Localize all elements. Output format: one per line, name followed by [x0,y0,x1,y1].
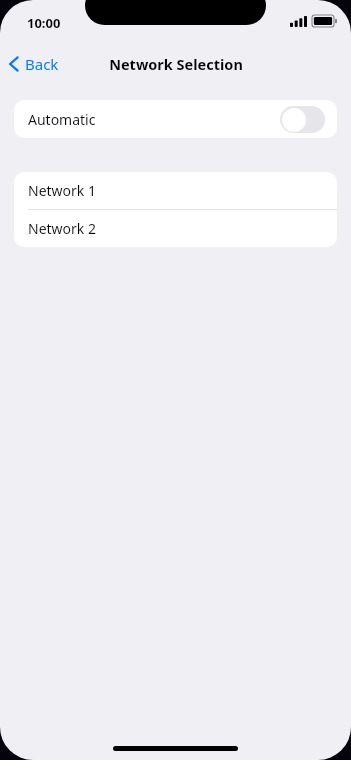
staticText: Network 1 [28,181,96,200]
staticText: Back [25,54,59,74]
button[interactable]: Automatic [14,100,337,138]
button[interactable]: Back [0,50,69,78]
other: Battery [312,15,337,27]
staticText: Network Selection [109,54,243,74]
button[interactable]: Network 2 [14,210,337,247]
button[interactable]: Automatic toggle [280,106,325,133]
staticText: Automatic [28,110,96,129]
staticText: Network 2 [28,219,96,238]
other: Cellular signal [290,16,307,27]
button[interactable]: Network 1 [14,172,337,209]
staticText: 10:00 [27,14,61,32]
